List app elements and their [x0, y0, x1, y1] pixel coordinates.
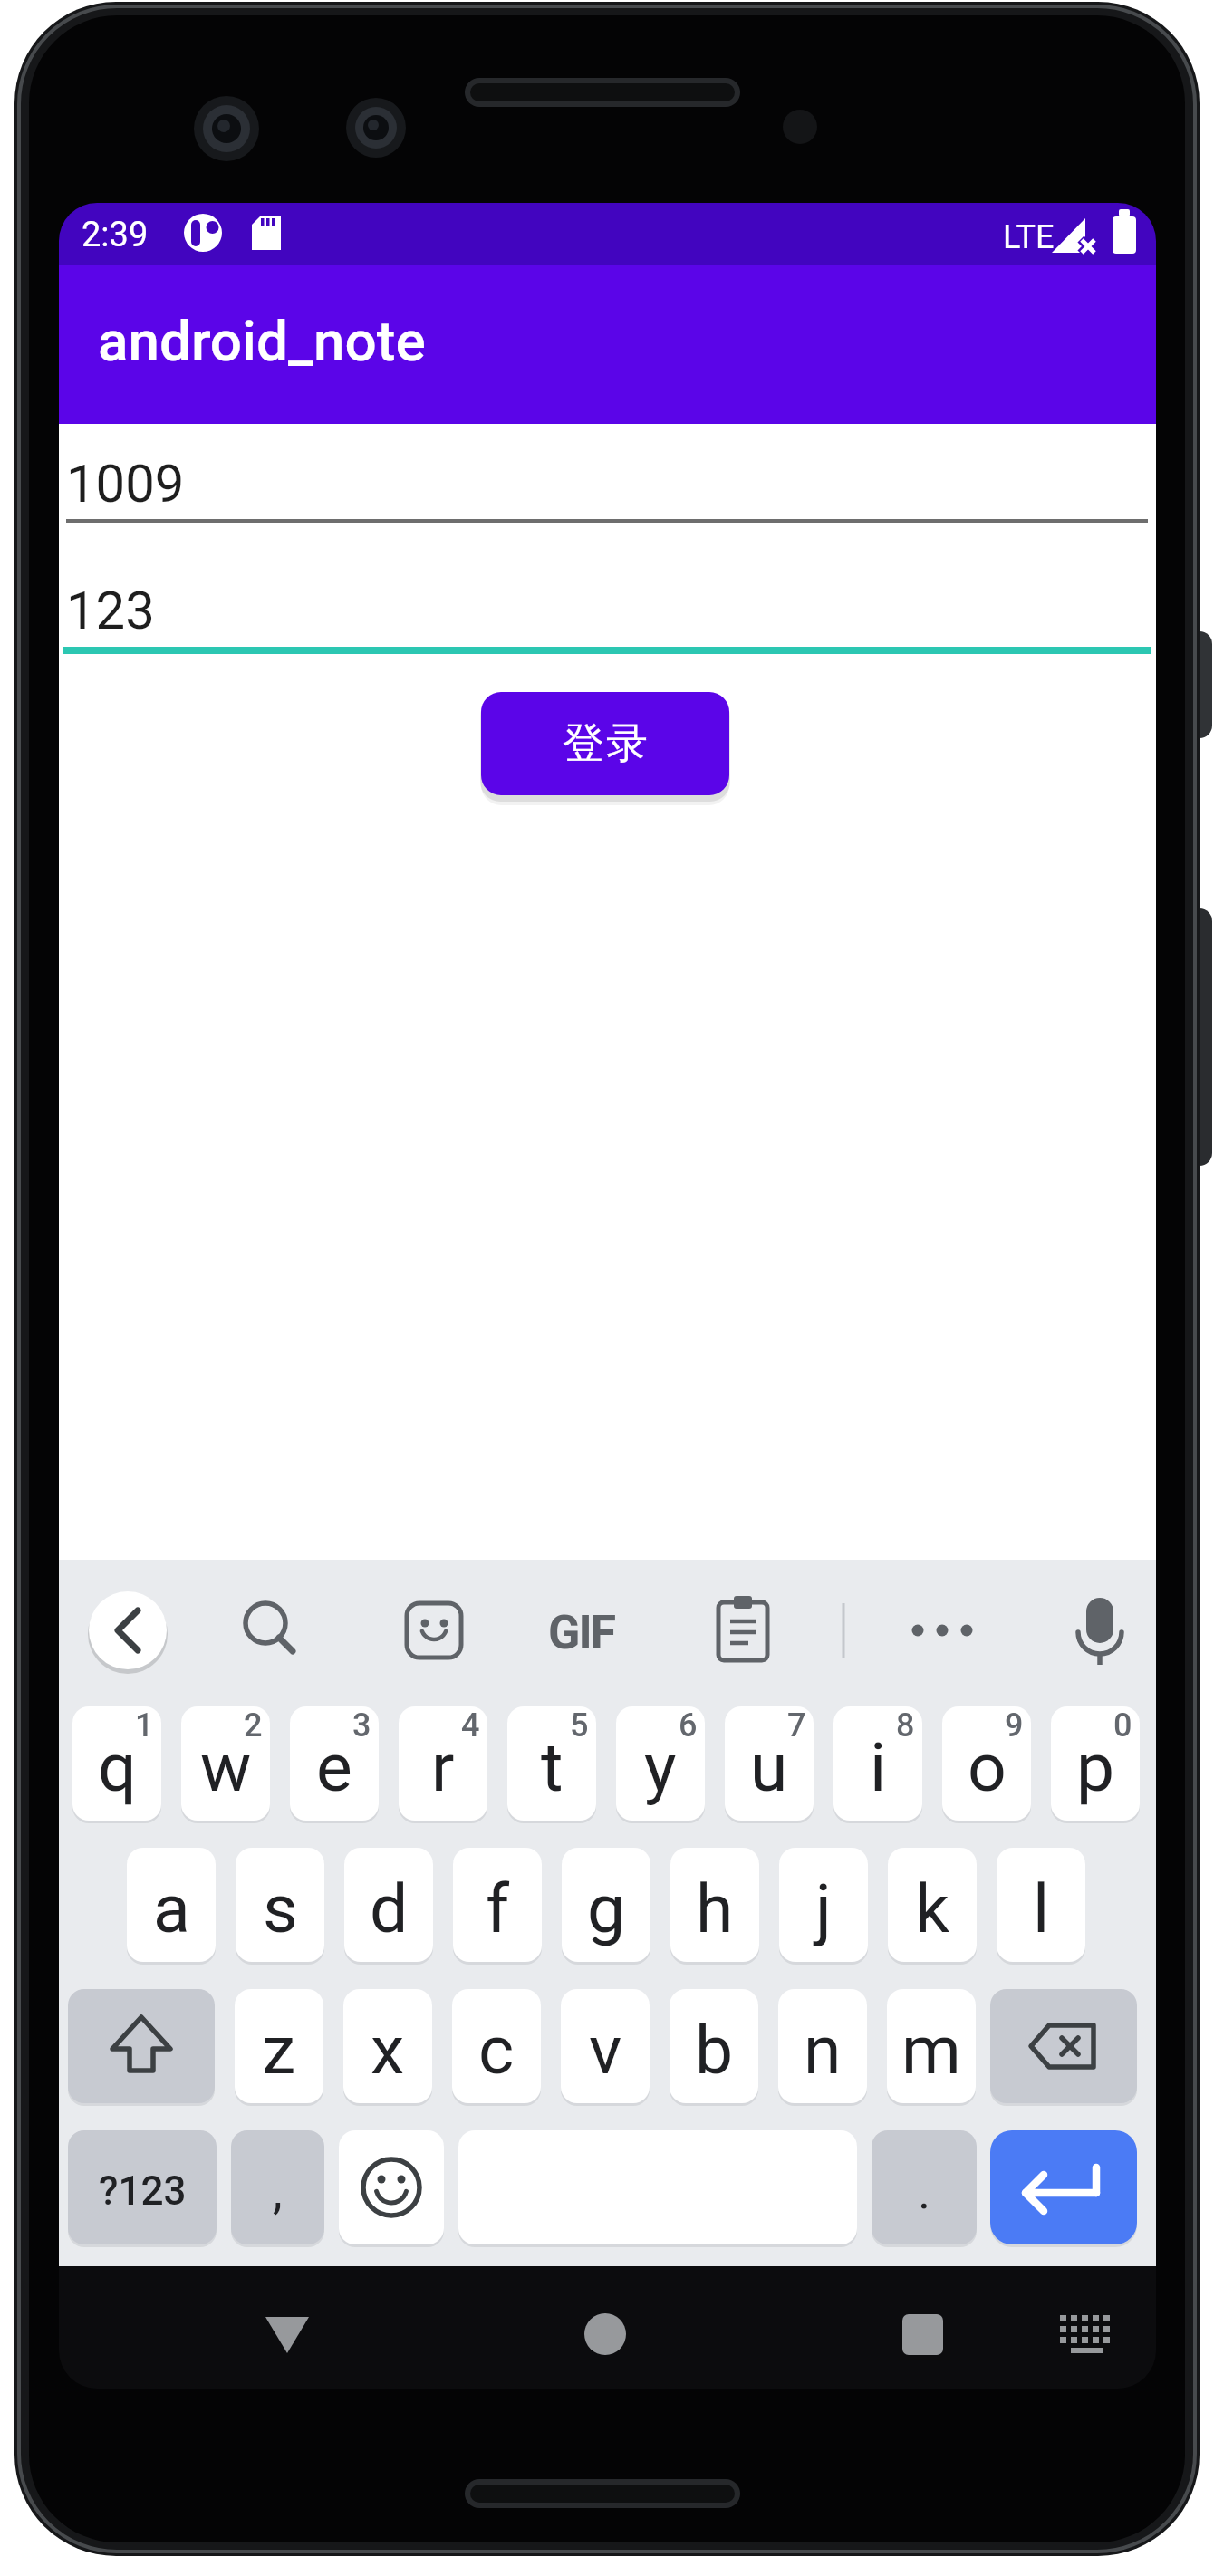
button[interactable]: [859, 2275, 986, 2384]
staticText: e: [316, 1727, 352, 1807]
staticText: x: [371, 2010, 405, 2090]
staticText: d: [370, 1869, 409, 1948]
staticText: y: [644, 1727, 677, 1807]
staticText: 7: [787, 1706, 806, 1745]
staticText: 登录: [562, 717, 649, 770]
button[interactable]: [708, 1594, 780, 1667]
button[interactable]: r: [399, 1706, 487, 1821]
staticText: LTE: [1003, 218, 1055, 256]
staticText: 1: [135, 1706, 154, 1745]
button[interactable]: a: [127, 1848, 216, 1962]
staticText: 5: [570, 1706, 589, 1745]
staticText: f: [486, 1869, 510, 1948]
button[interactable]: [230, 1594, 303, 1667]
button[interactable]: [542, 2275, 669, 2384]
button[interactable]: p: [1051, 1706, 1140, 1821]
button[interactable]: y: [616, 1706, 705, 1821]
button[interactable]: o: [942, 1706, 1031, 1821]
button[interactable]: v: [561, 1989, 650, 2103]
staticText: o: [968, 1727, 1007, 1807]
staticText: n: [804, 2010, 842, 2090]
staticText: m: [901, 2010, 961, 2090]
staticText: j: [815, 1869, 832, 1948]
button[interactable]: t: [507, 1706, 596, 1821]
button[interactable]: 登录: [481, 692, 729, 795]
staticText: 6: [679, 1706, 698, 1745]
button[interactable]: z: [235, 1989, 323, 2103]
button[interactable]: ,: [231, 2130, 324, 2244]
button[interactable]: u: [725, 1706, 814, 1821]
button[interactable]: q: [72, 1706, 161, 1821]
button[interactable]: [1027, 2275, 1136, 2384]
staticText: q: [98, 1727, 137, 1807]
button[interactable]: n: [778, 1989, 867, 2103]
button[interactable]: [548, 1594, 621, 1667]
staticText: 2:39: [82, 215, 149, 255]
button[interactable]: f: [453, 1848, 542, 1962]
button[interactable]: b: [670, 1989, 758, 2103]
staticText: z: [262, 2010, 296, 2090]
button[interactable]: d: [344, 1848, 433, 1962]
staticText: 8: [896, 1706, 915, 1745]
staticText: ,: [273, 2163, 283, 2220]
staticText: w: [200, 1727, 252, 1807]
staticText: v: [589, 2010, 622, 2090]
button[interactable]: [990, 2130, 1137, 2244]
button[interactable]: [92, 1594, 164, 1667]
staticText: k: [915, 1869, 950, 1948]
staticText: a: [153, 1869, 190, 1948]
button[interactable]: j: [779, 1848, 868, 1962]
staticText: android_note: [98, 308, 426, 374]
staticText: 9: [1005, 1706, 1024, 1745]
staticText: t: [541, 1727, 564, 1807]
button[interactable]: .: [872, 2130, 977, 2244]
staticText: GIF: [548, 1605, 615, 1660]
button[interactable]: k: [888, 1848, 977, 1962]
staticText: 1009: [66, 453, 185, 514]
staticText: h: [696, 1869, 734, 1948]
staticText: .: [918, 2163, 931, 2220]
button[interactable]: [224, 2275, 351, 2384]
button[interactable]: ?123: [68, 2130, 217, 2244]
staticText: s: [263, 1869, 298, 1948]
staticText: ?123: [99, 2167, 187, 2215]
button[interactable]: l: [997, 1848, 1085, 1962]
staticText: p: [1076, 1727, 1115, 1807]
button[interactable]: g: [562, 1848, 650, 1962]
staticText: u: [750, 1727, 788, 1807]
staticText: l: [1033, 1869, 1050, 1948]
staticText: 4: [461, 1706, 480, 1745]
button[interactable]: [68, 1989, 215, 2103]
button[interactable]: m: [887, 1989, 976, 2103]
button[interactable]: e: [290, 1706, 379, 1821]
button[interactable]: [394, 1594, 467, 1667]
staticText: r: [431, 1727, 455, 1807]
staticText: b: [695, 2010, 734, 2090]
button[interactable]: w: [181, 1706, 270, 1821]
staticText: 123: [66, 580, 155, 641]
staticText: 0: [1113, 1706, 1132, 1745]
button[interactable]: [339, 2130, 444, 2244]
button[interactable]: [990, 1989, 1137, 2103]
staticText: g: [587, 1869, 626, 1948]
button[interactable]: h: [670, 1848, 759, 1962]
staticText: 2: [244, 1706, 263, 1745]
staticText: 3: [352, 1706, 371, 1745]
staticText: c: [478, 2010, 515, 2090]
staticText: i: [870, 1727, 887, 1807]
button[interactable]: [1064, 1594, 1136, 1667]
button[interactable]: [903, 1594, 976, 1667]
button[interactable]: s: [236, 1848, 324, 1962]
button[interactable]: x: [343, 1989, 432, 2103]
button[interactable]: c: [452, 1989, 541, 2103]
button[interactable]: i: [833, 1706, 922, 1821]
